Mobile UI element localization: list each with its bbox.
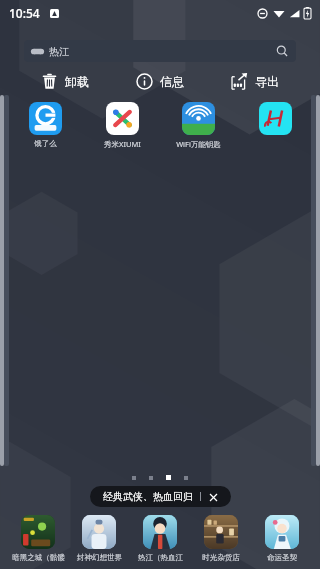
button[interactable]: Close banner xyxy=(208,492,218,502)
staticText: 饿了么 xyxy=(34,139,57,148)
button[interactable]: 经典武侠、热血回归 xyxy=(90,486,231,507)
staticText: 导出 xyxy=(255,74,279,89)
staticText: 时光杂货店 xyxy=(202,553,240,562)
button[interactable]: 热江（热血江 xyxy=(130,514,190,563)
button[interactable]: 卸载 xyxy=(18,71,112,92)
staticText: 秀米XIUMI xyxy=(104,139,141,149)
staticText: 热江 xyxy=(49,45,69,58)
button[interactable]: 饿了么 xyxy=(14,100,76,150)
staticText: 命运圣契 xyxy=(267,553,297,562)
staticText: 封神幻想世界 xyxy=(77,553,122,562)
staticText: WiFi万能钥匙 xyxy=(176,139,221,149)
button[interactable]: 秀米XIUMI xyxy=(91,100,153,151)
button[interactable]: 导出 xyxy=(207,71,302,92)
button[interactable] xyxy=(244,100,306,141)
button[interactable]: 命运圣契 xyxy=(252,514,312,563)
button[interactable]: 封神幻想世界 xyxy=(69,514,129,563)
staticText: 暗黑之城（骷髅 xyxy=(12,553,65,562)
button[interactable]: 信息 xyxy=(112,71,207,92)
button[interactable]: 热江 xyxy=(24,40,296,62)
staticText: 经典武侠、热血回归 xyxy=(103,490,193,503)
button[interactable]: 暗黑之城（骷髅 xyxy=(8,514,68,563)
other: Search xyxy=(276,45,288,57)
button[interactable]: WiFi万能钥匙 xyxy=(167,100,229,151)
staticText: 10:54 xyxy=(9,5,40,21)
staticText: 信息 xyxy=(160,74,184,89)
staticText: 热江（热血江 xyxy=(138,553,183,562)
button[interactable]: 时光杂货店 xyxy=(191,514,251,563)
staticText: 卸载 xyxy=(65,74,89,89)
